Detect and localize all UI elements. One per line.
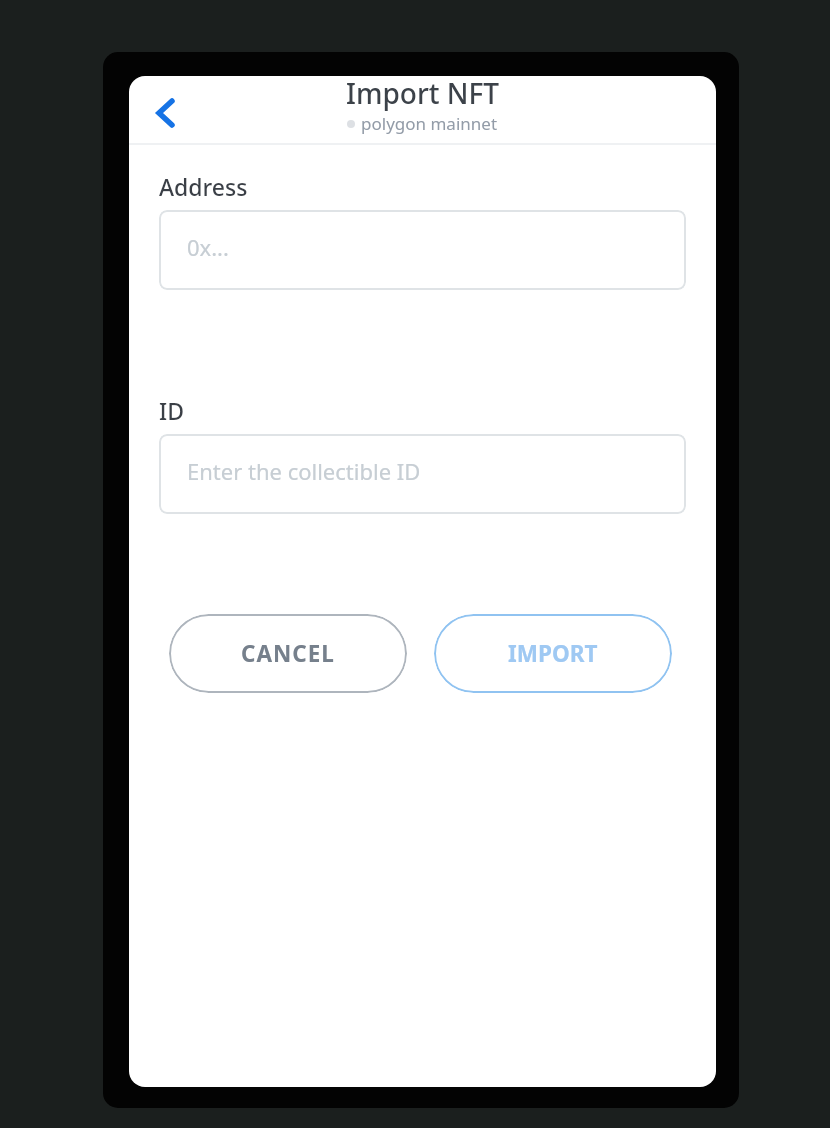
staticText: CANCEL <box>241 638 335 669</box>
button[interactable]: IMPORT <box>434 614 672 693</box>
staticText: IMPORT <box>508 638 598 669</box>
staticText: Address <box>159 171 248 202</box>
staticText: ID <box>159 395 184 426</box>
button[interactable]: CANCEL <box>169 614 407 693</box>
staticText: Enter the collectible ID <box>187 456 421 486</box>
staticText: 0x... <box>187 232 229 262</box>
button[interactable]: 0x... <box>159 210 686 290</box>
button[interactable]: Enter the collectible ID <box>159 434 686 514</box>
button[interactable] <box>141 89 189 137</box>
staticText: Import NFT <box>346 76 499 112</box>
staticText: polygon mainnet <box>361 112 498 135</box>
